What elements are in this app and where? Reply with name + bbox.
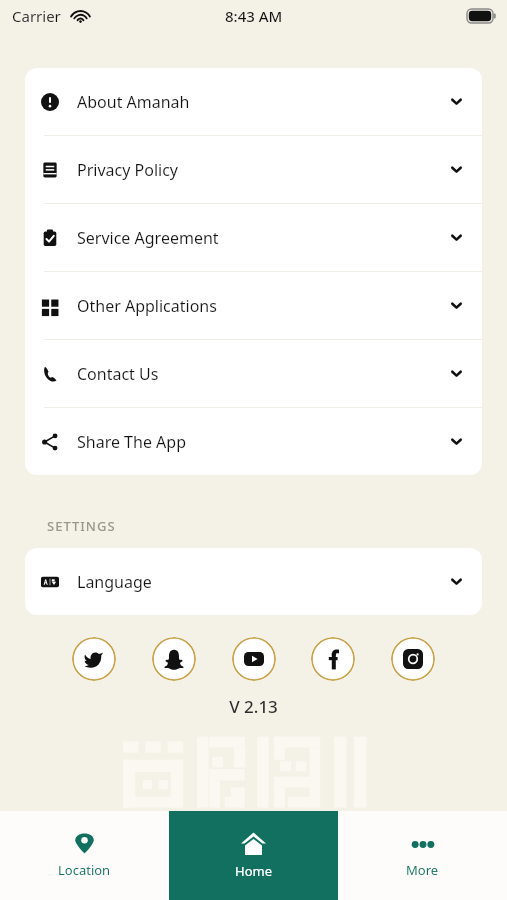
staticText: More [406,861,439,879]
button[interactable]: YouTube [232,637,276,681]
button[interactable]: Home [169,811,338,900]
button[interactable]: Language [25,548,482,615]
staticText: Privacy Policy [77,159,449,181]
button[interactable]: Service Agreement [25,204,482,272]
staticText: Share The App [77,431,449,453]
button[interactable]: Facebook [311,637,355,681]
button[interactable]: Privacy Policy [25,136,482,204]
button[interactable]: Other Applications [25,272,482,340]
button[interactable]: Share The App [25,408,482,475]
staticText: Language [77,571,449,593]
staticText: Location [58,861,111,879]
button[interactable]: Location [0,811,169,900]
staticText: Other Applications [77,295,449,317]
button[interactable]: Instagram [391,637,435,681]
staticText: Carrier [12,6,61,26]
button[interactable]: About Amanah [25,68,482,136]
staticText: V 2.13 [25,695,482,718]
button[interactable]: Twitter [72,637,116,681]
staticText: About Amanah [77,91,449,113]
button[interactable]: More [338,811,507,900]
staticText: Service Agreement [77,227,449,249]
staticText: Home [235,862,272,880]
staticText: Contact Us [77,363,449,385]
button[interactable]: Contact Us [25,340,482,408]
button[interactable]: Snapchat [152,637,196,681]
staticText: SETTINGS [47,517,116,535]
staticText: 8:43 AM [225,6,283,26]
